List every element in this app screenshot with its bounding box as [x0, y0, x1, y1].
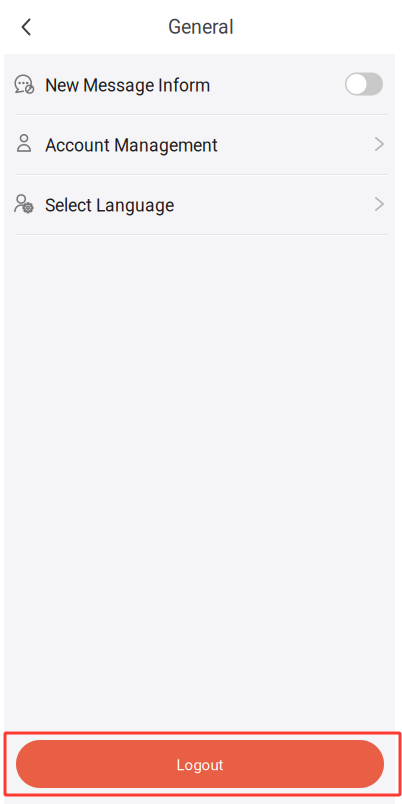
staticText: Select Language [45, 195, 174, 216]
button[interactable]: New Message Inform [4, 54, 395, 114]
button[interactable]: Select Language [4, 174, 395, 234]
button[interactable]: Account Management [4, 114, 395, 174]
staticText: New Message Inform [45, 75, 210, 96]
button[interactable]: Logout [16, 740, 384, 788]
staticText: General [168, 16, 234, 38]
staticText: Account Management [45, 135, 218, 156]
button[interactable]: Back [9, 5, 43, 49]
staticText: Logout [176, 756, 223, 774]
